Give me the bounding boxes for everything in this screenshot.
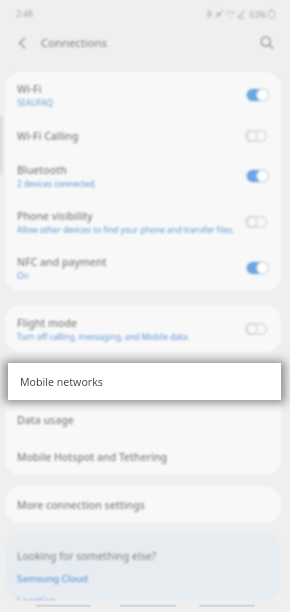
staticText: Samsung Cloud — [17, 572, 88, 585]
button[interactable]: Data usage — [5, 401, 281, 438]
staticText: Location — [17, 594, 56, 600]
button[interactable]: Wi-Fi Calling — [5, 118, 281, 153]
staticText: SEAUFAQ — [17, 97, 53, 108]
staticText: Wi-Fi — [17, 82, 42, 96]
button[interactable]: NFC and payment — [5, 245, 281, 291]
button[interactable]: Phone visibility — [5, 199, 281, 245]
staticText: More connection settings — [17, 498, 145, 512]
staticText: Mobile Hotspot and Tethering — [17, 450, 168, 464]
button[interactable]: Flight mode — [5, 305, 281, 352]
button[interactable]: Wi-Fi — [5, 72, 281, 118]
staticText: 63% — [250, 9, 266, 20]
staticText: Mobile networks — [17, 376, 101, 390]
button[interactable]: Mobile networks — [5, 364, 281, 401]
staticText: Mobile networks — [20, 375, 103, 389]
button[interactable]: More connection settings — [5, 486, 281, 523]
button[interactable]: Mobile Hotspot and Tethering — [5, 438, 281, 475]
button[interactable]: Back — [12, 33, 32, 53]
staticText: Looking for something else? — [17, 549, 157, 563]
staticText: Connections — [41, 35, 107, 50]
button[interactable]: Mobile networks — [8, 363, 281, 400]
staticText: Flight mode — [17, 316, 77, 330]
staticText: Bluetooth — [17, 163, 67, 177]
staticText: NFC and payment — [17, 255, 107, 269]
staticText: On — [17, 270, 29, 281]
staticText: Allow other devices to find your phone a… — [17, 224, 235, 235]
button[interactable]: Search — [256, 32, 278, 54]
staticText: Turn off calling, messaging, and Mobile … — [17, 331, 190, 342]
button[interactable]: Bluetooth — [5, 153, 281, 199]
staticText: 2:48 — [16, 8, 33, 20]
staticText: Wi-Fi Calling — [17, 129, 79, 143]
staticText: 2 devices connected. — [17, 178, 97, 189]
staticText: Data usage — [17, 413, 74, 427]
staticText: Phone visibility — [17, 209, 93, 223]
